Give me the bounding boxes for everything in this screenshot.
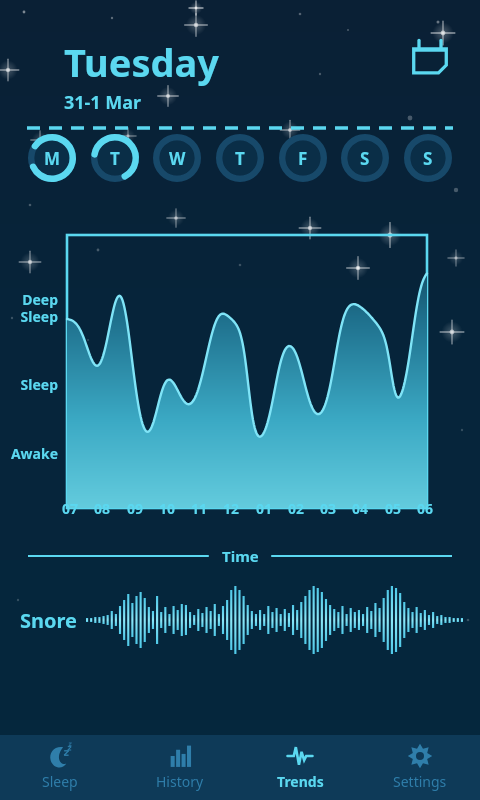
staticText: 04 — [352, 499, 369, 518]
staticText: 31-1 Mar — [64, 90, 142, 115]
staticText: F — [298, 147, 308, 170]
button[interactable]: Settings — [360, 735, 480, 791]
button[interactable]: F — [279, 134, 327, 182]
staticText: Sleep — [8, 375, 58, 394]
staticText: Deep Sleep — [8, 290, 58, 326]
button[interactable]: S — [341, 134, 389, 182]
button[interactable]: W — [153, 134, 201, 182]
button[interactable]: History — [120, 735, 240, 791]
staticText: 11 — [191, 499, 208, 518]
button[interactable]: S — [404, 134, 452, 182]
staticText: T — [110, 147, 120, 170]
button[interactable]: T — [91, 134, 139, 182]
staticText: Trends — [277, 772, 324, 791]
button[interactable]: M — [28, 134, 76, 182]
button[interactable]: Sleep — [0, 735, 120, 791]
staticText: T — [235, 147, 245, 170]
button[interactable]: Trends — [240, 735, 360, 791]
staticText: Snore — [20, 607, 77, 634]
staticText: Time — [222, 546, 259, 566]
staticText: 01 — [256, 499, 273, 518]
staticText: S — [360, 147, 370, 170]
staticText: 03 — [320, 499, 337, 518]
staticText: W — [169, 147, 186, 170]
staticText: M — [44, 147, 61, 170]
staticText: Awake — [8, 444, 58, 463]
staticText: 07 — [62, 499, 79, 518]
staticText: 06 — [417, 499, 434, 518]
staticText: 10 — [159, 499, 176, 518]
staticText: History — [156, 772, 204, 791]
staticText: Settings — [393, 772, 447, 791]
staticText: Tuesday — [64, 36, 219, 88]
staticText: Sleep — [42, 772, 78, 791]
button[interactable]: Calendar — [408, 36, 452, 80]
staticText: 09 — [127, 499, 144, 518]
staticText: S — [423, 147, 433, 170]
staticText: 12 — [223, 499, 240, 518]
staticText: 02 — [288, 499, 305, 518]
button[interactable]: T — [216, 134, 264, 182]
staticText: 05 — [385, 499, 402, 518]
staticText: 08 — [94, 499, 111, 518]
